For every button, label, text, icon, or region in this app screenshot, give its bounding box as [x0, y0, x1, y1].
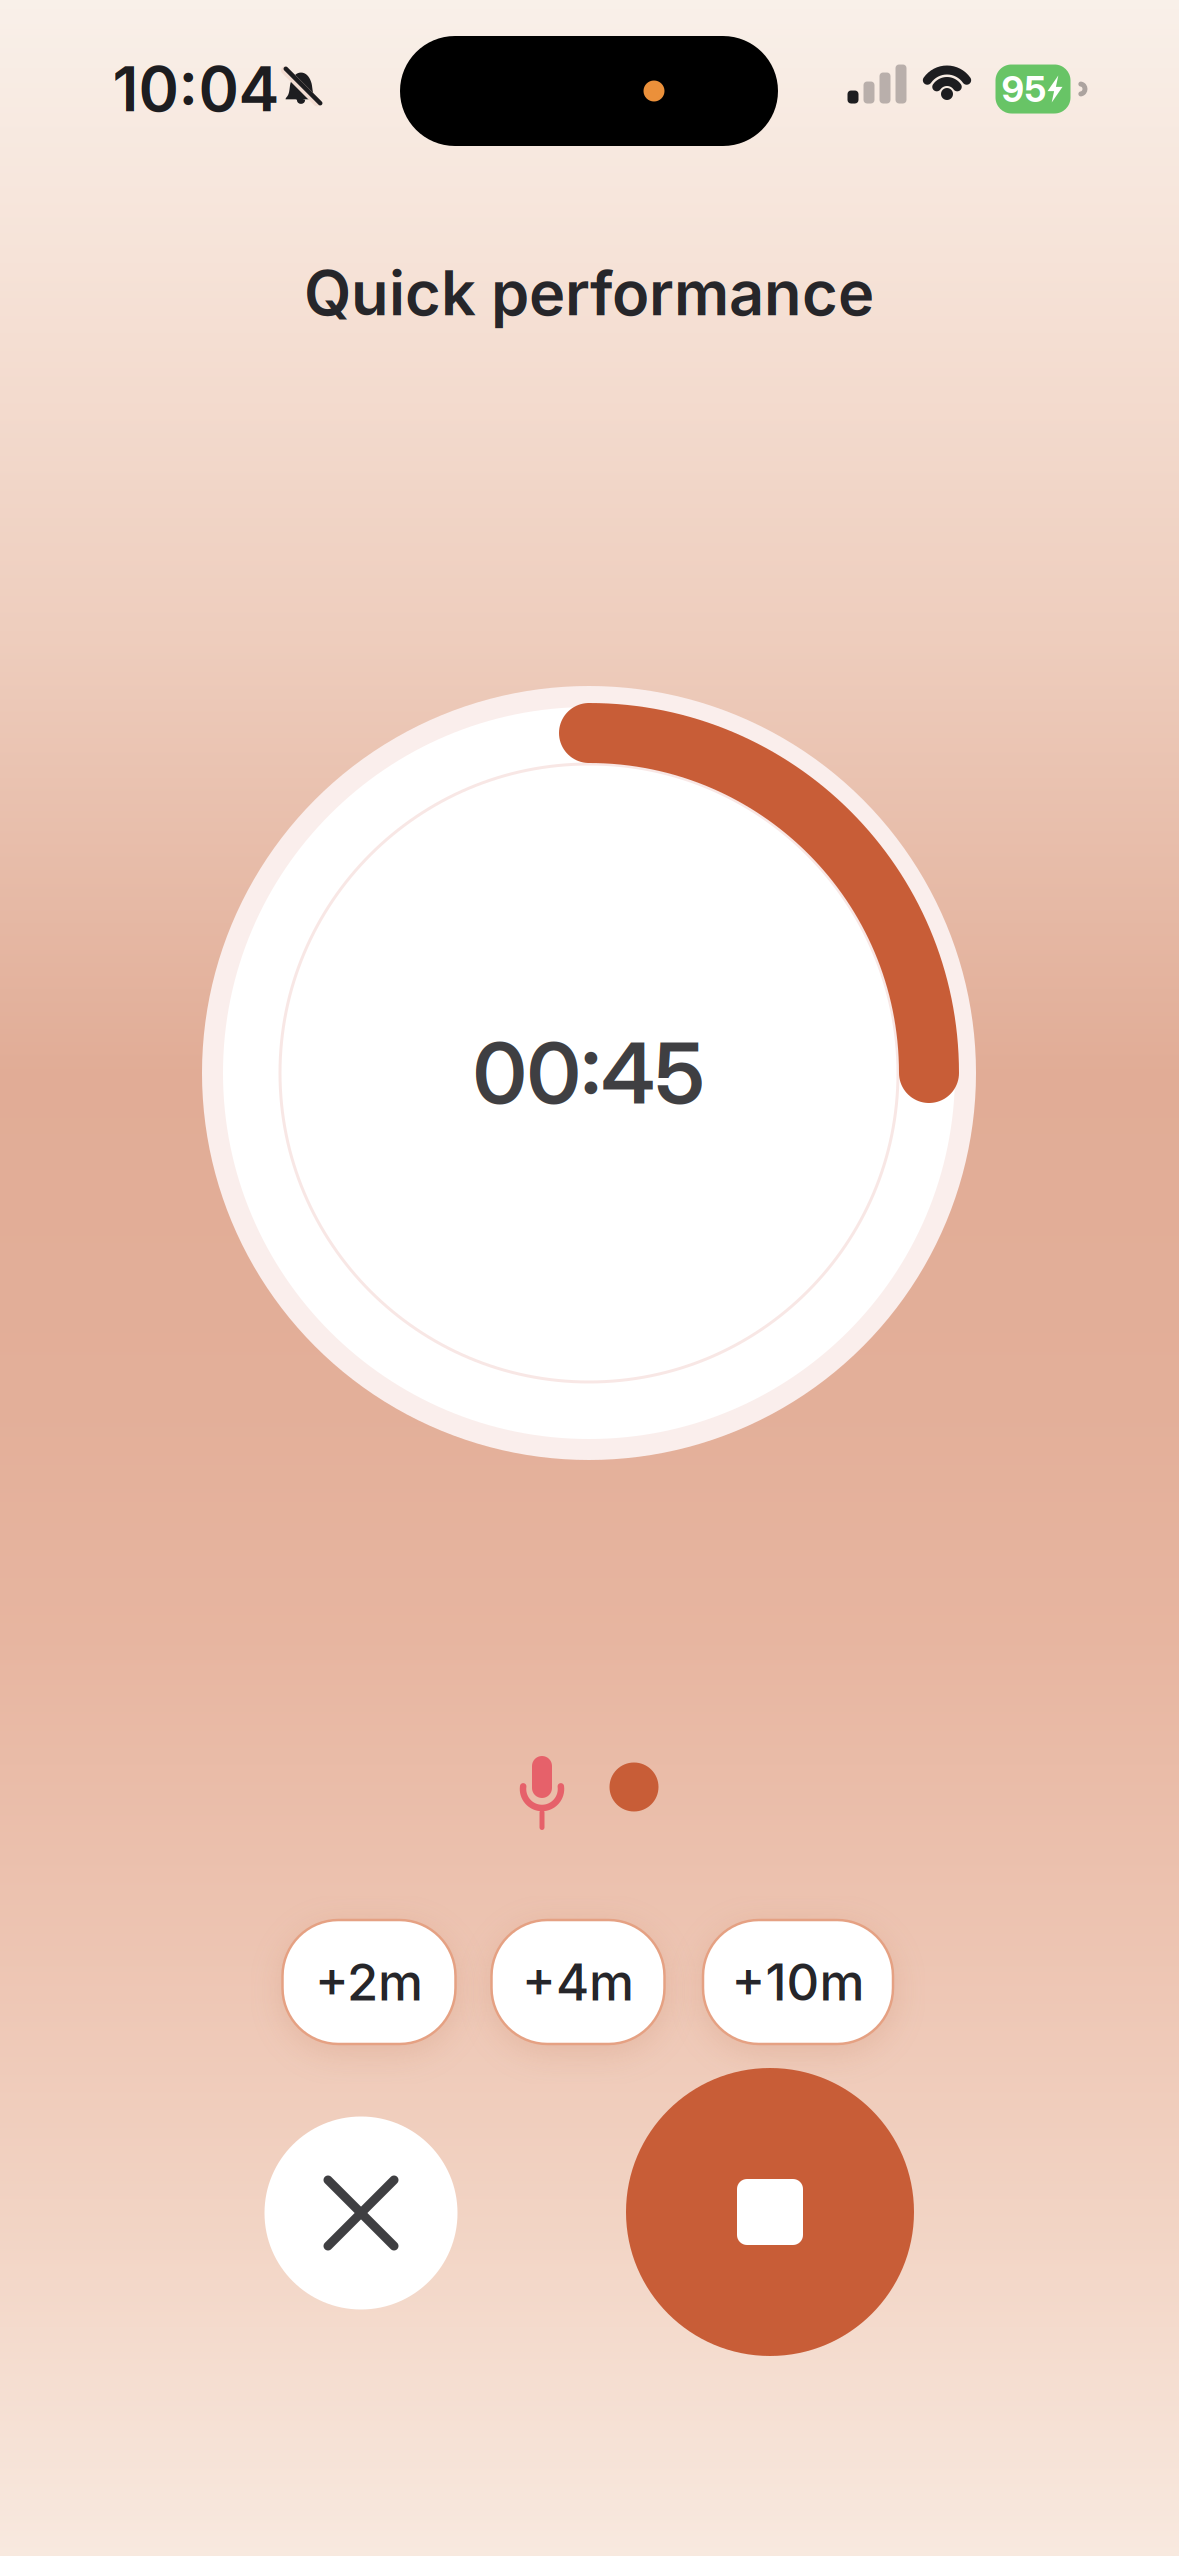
staticText: 10:04	[112, 52, 279, 126]
button[interactable]: +2m	[282, 1920, 455, 2044]
button[interactable]	[626, 2068, 914, 2356]
staticText: +10m	[731, 1951, 864, 2013]
staticText: 00:45	[473, 1022, 705, 1124]
staticText: 95	[1001, 67, 1046, 111]
button[interactable]	[264, 2116, 457, 2309]
staticText: +2m	[315, 1951, 423, 2013]
staticText: +4m	[522, 1951, 634, 2013]
button[interactable]: +10m	[703, 1920, 893, 2044]
button[interactable]: +4m	[491, 1920, 664, 2044]
staticText: Quick performance	[304, 256, 874, 330]
